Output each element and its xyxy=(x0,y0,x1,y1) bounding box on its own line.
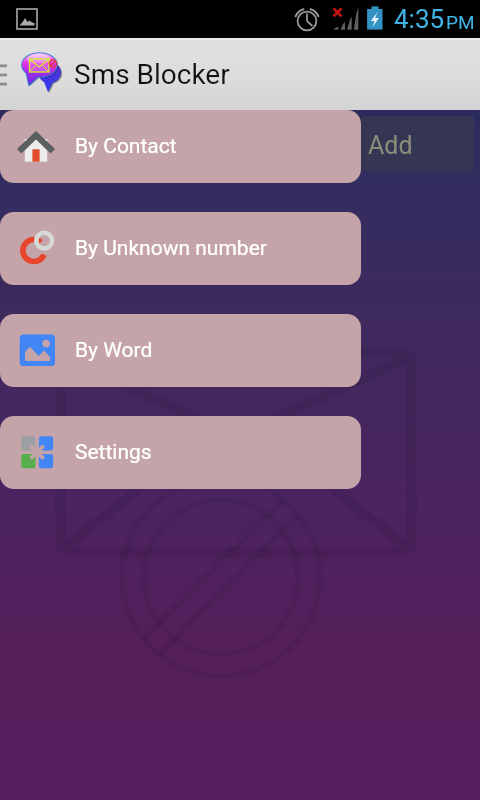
button[interactable]: Menu xyxy=(0,63,7,87)
button[interactable]: By Unknown number xyxy=(0,212,361,285)
button[interactable]: By Word xyxy=(0,314,361,387)
staticText: Sms Blocker xyxy=(74,58,230,91)
button[interactable]: Add xyxy=(361,116,474,171)
button[interactable]: By Contact xyxy=(0,110,361,183)
staticText: By Word xyxy=(75,338,153,363)
button[interactable]: Settings xyxy=(0,416,361,489)
staticText: By Unknown number xyxy=(75,236,267,261)
staticText: PM xyxy=(446,11,475,33)
staticText: Settings xyxy=(75,440,152,465)
staticText: Add xyxy=(368,131,413,160)
staticText: By Contact xyxy=(75,134,177,159)
staticText: 4:35 xyxy=(394,4,445,34)
